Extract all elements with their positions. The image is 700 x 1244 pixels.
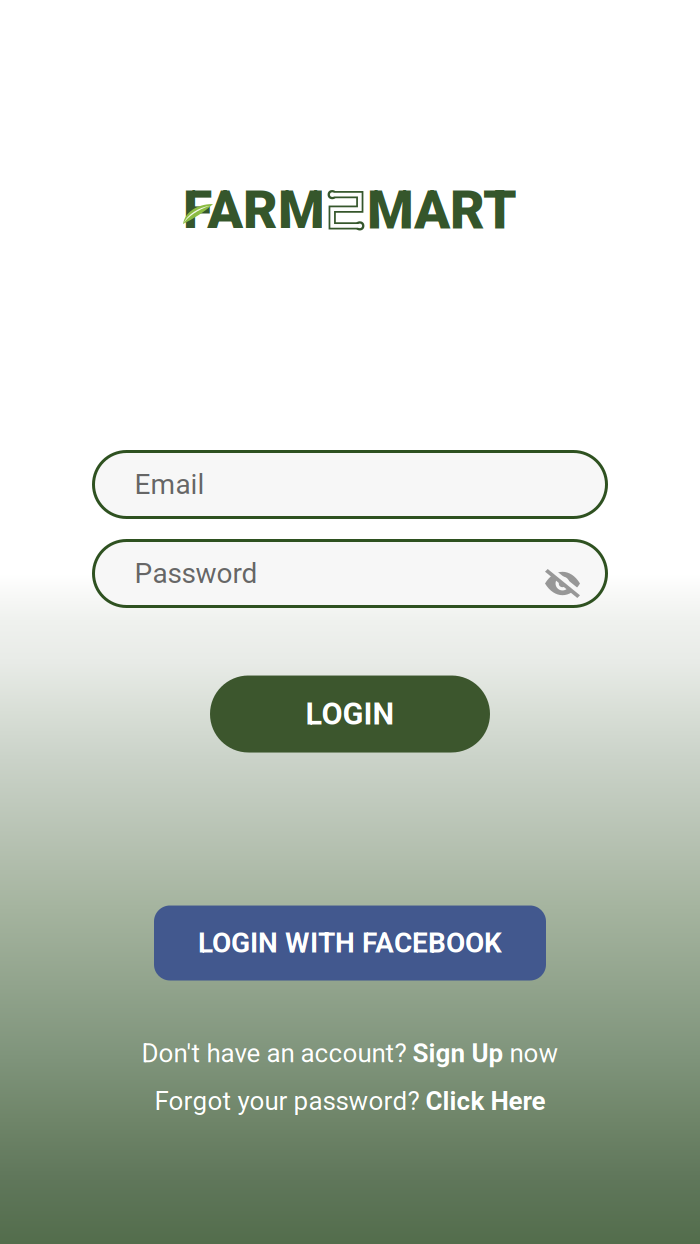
staticText: LOGIN WITH FACEBOOK <box>198 927 502 959</box>
button[interactable]: LOGIN <box>210 675 490 752</box>
button[interactable]: Don't have an account? Sign Up now <box>141 1038 558 1068</box>
staticText: MART <box>367 179 517 241</box>
button[interactable]: LOGIN WITH FACEBOOK <box>154 905 546 980</box>
staticText: Forgot your password? Click Here <box>154 1086 545 1116</box>
staticText: FARM <box>183 179 325 241</box>
staticText: Password <box>134 557 257 590</box>
staticText: LOGIN <box>305 696 394 732</box>
button[interactable]: Forgot your password? Click Here <box>154 1086 545 1116</box>
staticText: Don't have an account? Sign Up now <box>141 1038 558 1068</box>
staticText: Email <box>134 468 204 501</box>
